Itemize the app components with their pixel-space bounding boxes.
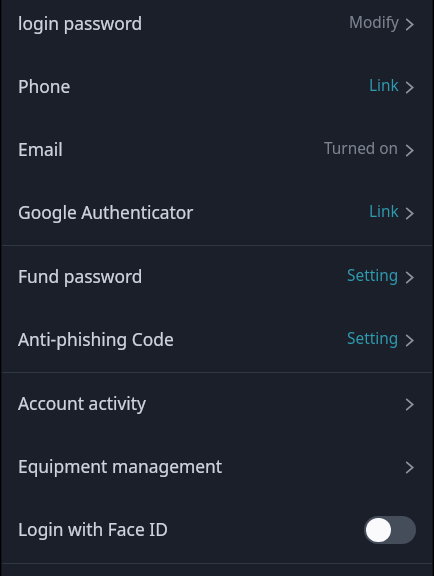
staticText: Email: [18, 137, 63, 161]
button[interactable]: Phone: [0, 56, 434, 119]
other: Open: [405, 461, 414, 474]
button[interactable]: Fund password: [0, 246, 434, 309]
staticText: Phone: [18, 74, 71, 98]
button[interactable]: login password: [0, 0, 434, 56]
staticText: Setting: [347, 328, 399, 349]
staticText: Link: [369, 201, 399, 222]
other: Open: [405, 81, 414, 94]
button[interactable]: Equipment management: [0, 436, 434, 499]
other: Open: [405, 207, 414, 220]
staticText: Anti-phishing Code: [18, 327, 174, 351]
other: Open: [405, 398, 414, 411]
other: Open: [405, 334, 414, 347]
staticText: Modify: [349, 12, 399, 33]
staticText: Setting: [347, 265, 399, 286]
staticText: Link: [369, 75, 399, 96]
other: Open: [405, 18, 414, 31]
staticText: Equipment management: [18, 454, 223, 478]
other: Open: [405, 144, 414, 157]
button[interactable]: Email: [0, 119, 434, 182]
staticText: Account activity: [18, 391, 146, 415]
button[interactable]: Anti-phishing Code: [0, 309, 434, 372]
button[interactable]: Login with Face ID: [0, 499, 434, 563]
button[interactable]: Google Authenticator: [0, 182, 434, 245]
staticText: Fund password: [18, 264, 143, 288]
staticText: Login with Face ID: [18, 517, 168, 541]
button[interactable]: Login with Face ID toggle: [364, 516, 416, 544]
button[interactable]: Account activity: [0, 373, 434, 436]
staticText: Turned on: [324, 138, 399, 159]
staticText: Google Authenticator: [18, 200, 194, 224]
other: Open: [405, 271, 414, 284]
staticText: login password: [18, 11, 143, 35]
